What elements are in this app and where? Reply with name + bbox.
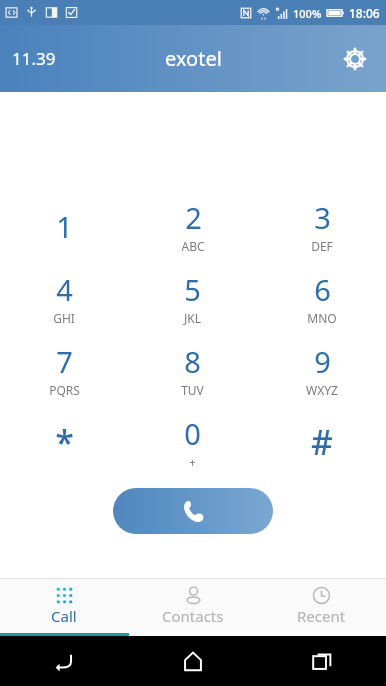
staticText: 3	[314, 198, 331, 237]
button[interactable]: Contacts	[128, 579, 257, 633]
staticText: 8	[184, 342, 201, 381]
staticText: 0	[184, 414, 201, 453]
button[interactable]: 8	[128, 334, 257, 406]
staticText: Call	[51, 606, 77, 626]
staticText: TUV	[181, 382, 204, 398]
staticText: Recent	[297, 606, 346, 626]
button[interactable]: 1	[0, 190, 128, 262]
staticText: PQRS	[49, 382, 80, 398]
staticText: 4	[56, 270, 73, 309]
staticText: MNO	[307, 310, 337, 326]
button[interactable]: 5	[128, 262, 257, 334]
staticText: 6	[314, 270, 331, 309]
button[interactable]: Call	[113, 488, 273, 534]
button[interactable]: 9	[257, 334, 386, 406]
staticText: 2	[185, 198, 202, 237]
button[interactable]: 2	[128, 190, 257, 262]
staticText: 5	[184, 270, 201, 309]
button[interactable]: Call	[0, 579, 128, 633]
staticText: JKL	[184, 310, 201, 326]
button[interactable]: Back	[0, 636, 128, 686]
button[interactable]: *	[0, 406, 128, 478]
button[interactable]: 0	[128, 406, 257, 478]
button[interactable]: 4	[0, 262, 128, 334]
staticText: Contacts	[162, 606, 224, 626]
staticText: 11.39	[12, 47, 56, 70]
staticText: 100%	[293, 6, 322, 21]
staticText: *	[55, 419, 74, 465]
staticText: DEF	[311, 238, 333, 254]
staticText: +	[189, 454, 196, 470]
button[interactable]: 3	[257, 190, 386, 262]
button[interactable]: #	[257, 406, 386, 478]
button[interactable]: Home	[128, 636, 257, 686]
staticText: 1	[56, 207, 73, 246]
button[interactable]: 6	[257, 262, 386, 334]
staticText: ABC	[181, 238, 205, 254]
staticText: 18:06	[349, 5, 380, 21]
staticText: 9	[314, 342, 331, 381]
staticText: WXYZ	[306, 382, 338, 398]
button[interactable]: Settings	[338, 42, 372, 76]
button[interactable]: 7	[0, 334, 128, 406]
button[interactable]: Recent	[257, 579, 386, 633]
button[interactable]: Recent apps	[257, 636, 386, 686]
staticText: exotel	[165, 45, 222, 72]
staticText: GHI	[53, 310, 75, 326]
staticText: #	[311, 419, 333, 465]
staticText: 7	[56, 342, 73, 381]
